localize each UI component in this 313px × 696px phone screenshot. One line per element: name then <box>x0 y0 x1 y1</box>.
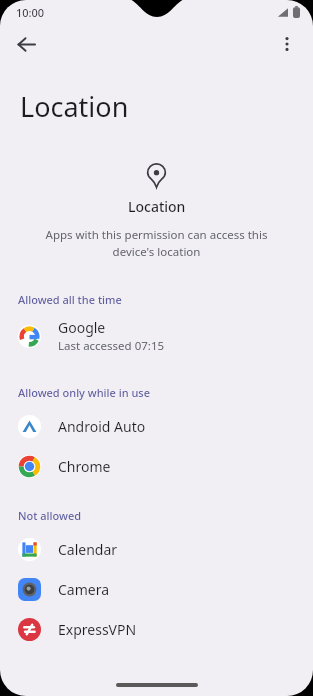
staticText: ExpressVPN <box>58 620 137 639</box>
button[interactable]: Back <box>6 24 46 64</box>
button[interactable]: More options <box>267 24 307 64</box>
button[interactable]: Calendar <box>0 529 313 569</box>
button[interactable]: Google <box>0 313 313 359</box>
button[interactable]: Chrome <box>0 446 313 486</box>
button[interactable]: ExpressVPN <box>0 609 313 649</box>
staticText: Location <box>128 197 186 216</box>
staticText: Google <box>58 318 106 337</box>
staticText: 10:00 <box>16 5 45 20</box>
staticText: Last accessed 07:15 <box>58 338 165 354</box>
staticText: Allowed only while in use <box>18 385 150 400</box>
staticText: Android Auto <box>58 417 146 436</box>
staticText: Location <box>20 88 129 125</box>
staticText: Chrome <box>58 457 111 476</box>
staticText: Not allowed <box>18 508 82 523</box>
staticText: Calendar <box>58 540 118 559</box>
staticText: Allowed all the time <box>18 292 122 307</box>
staticText: Apps with this permission can access thi… <box>28 227 285 259</box>
staticText: Camera <box>58 580 110 599</box>
button[interactable]: Camera <box>0 569 313 609</box>
button[interactable]: Android Auto <box>0 406 313 446</box>
